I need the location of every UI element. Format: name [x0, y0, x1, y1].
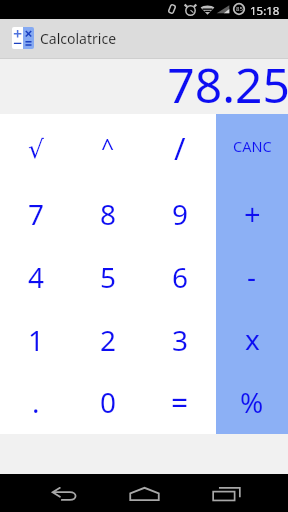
- button[interactable]: =: [144, 373, 216, 434]
- staticText: %: [240, 383, 264, 421]
- button[interactable]: 3: [144, 310, 216, 373]
- staticText: /: [174, 127, 186, 169]
- button[interactable]: 4: [0, 247, 72, 310]
- button[interactable]: CANC: [216, 114, 288, 184]
- staticText: 4: [28, 258, 45, 296]
- button[interactable]: ^: [72, 114, 144, 184]
- button[interactable]: .: [0, 373, 72, 434]
- staticText: 1: [28, 321, 45, 359]
- button[interactable]: Back: [24, 474, 104, 512]
- staticText: 3: [172, 321, 189, 359]
- staticText: ^: [101, 131, 115, 162]
- staticText: 6: [172, 258, 189, 296]
- staticText: 7: [28, 195, 45, 233]
- staticText: √: [28, 135, 44, 164]
- staticText: +: [244, 194, 261, 233]
- button[interactable]: Recent apps: [186, 474, 266, 512]
- button[interactable]: 6: [144, 247, 216, 310]
- button[interactable]: 0: [72, 373, 144, 434]
- button[interactable]: 5: [72, 247, 144, 310]
- button[interactable]: Home: [104, 474, 184, 512]
- staticText: -: [247, 257, 257, 295]
- button[interactable]: 2: [72, 310, 144, 373]
- staticText: 5: [100, 258, 117, 296]
- staticText: Calcolatrice: [40, 29, 117, 48]
- staticText: 0: [100, 383, 117, 421]
- staticText: 85: [236, 5, 243, 13]
- button[interactable]: /: [144, 114, 216, 184]
- staticText: =: [171, 382, 189, 423]
- staticText: .: [32, 383, 40, 421]
- button[interactable]: +: [216, 184, 288, 247]
- button[interactable]: 1: [0, 310, 72, 373]
- button[interactable]: 9: [144, 184, 216, 247]
- button[interactable]: -: [216, 247, 288, 310]
- button[interactable]: %: [216, 373, 288, 434]
- staticText: 2: [100, 321, 117, 359]
- button[interactable]: x: [216, 310, 288, 373]
- staticText: 15:18: [250, 3, 280, 19]
- staticText: 8: [100, 195, 117, 233]
- staticText: 78.25: [167, 52, 288, 107]
- button[interactable]: 8: [72, 184, 144, 247]
- staticText: x: [245, 320, 260, 358]
- button[interactable]: √: [0, 114, 72, 184]
- staticText: CANC: [233, 136, 272, 156]
- button[interactable]: 7: [0, 184, 72, 247]
- staticText: 9: [172, 195, 189, 233]
